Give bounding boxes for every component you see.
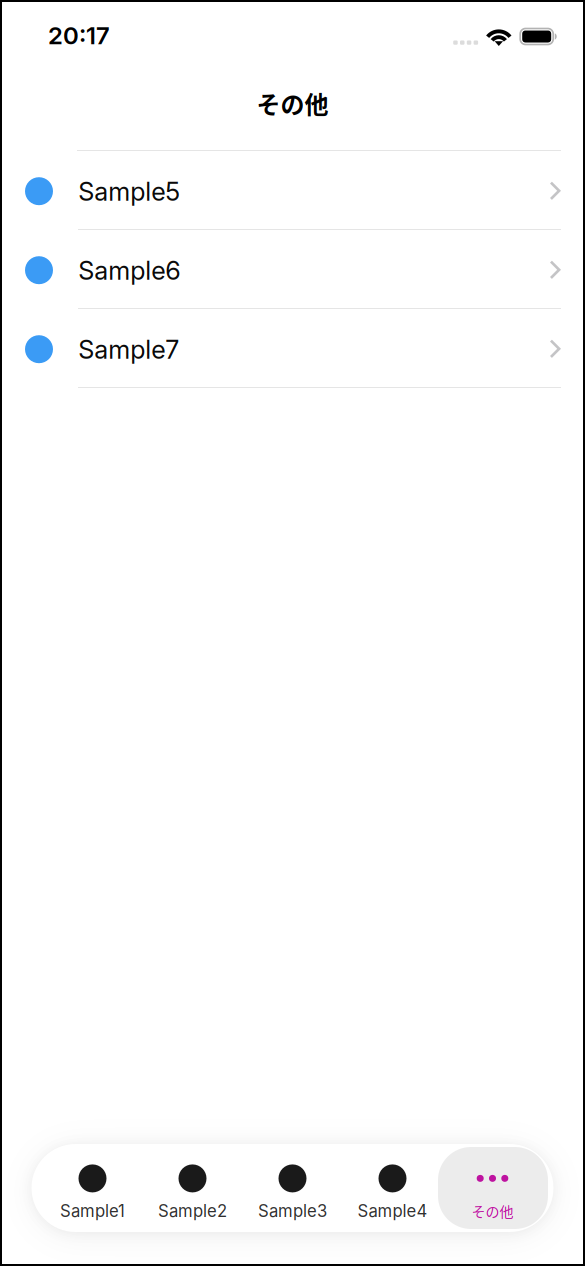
button[interactable]: Sample7 xyxy=(0,309,585,388)
staticText: Sample3 xyxy=(258,1201,327,1221)
staticText: Sample5 xyxy=(78,176,180,207)
button[interactable]: Sample6 xyxy=(0,230,585,309)
staticText: その他 xyxy=(256,86,328,120)
button[interactable]: Sample4 xyxy=(342,1147,442,1229)
button[interactable]: Sample3 xyxy=(242,1147,342,1229)
button[interactable]: Sample1 xyxy=(42,1147,142,1229)
staticText: その他 xyxy=(471,1201,513,1221)
button[interactable]: Sample2 xyxy=(142,1147,242,1229)
staticText: Sample7 xyxy=(78,334,179,365)
staticText: Sample1 xyxy=(60,1201,125,1221)
button[interactable]: その他 xyxy=(442,1147,542,1229)
staticText: Sample2 xyxy=(158,1201,227,1221)
button[interactable]: Sample5 xyxy=(0,151,585,230)
staticText: 20:17 xyxy=(48,21,110,50)
staticText: Sample6 xyxy=(78,255,180,286)
staticText: Sample4 xyxy=(357,1201,427,1221)
